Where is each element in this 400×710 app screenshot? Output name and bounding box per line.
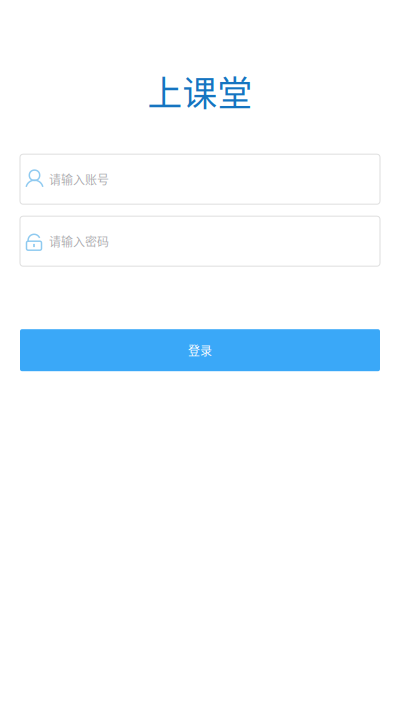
- staticText: 登录: [188, 341, 212, 359]
- staticText: 请输入账号: [49, 170, 109, 188]
- staticText: 上课堂: [147, 66, 252, 116]
- button[interactable]: 请输入密码: [20, 216, 380, 266]
- staticText: 请输入密码: [49, 232, 109, 250]
- button[interactable]: 请输入账号: [20, 154, 380, 204]
- button[interactable]: 登录: [20, 329, 380, 371]
